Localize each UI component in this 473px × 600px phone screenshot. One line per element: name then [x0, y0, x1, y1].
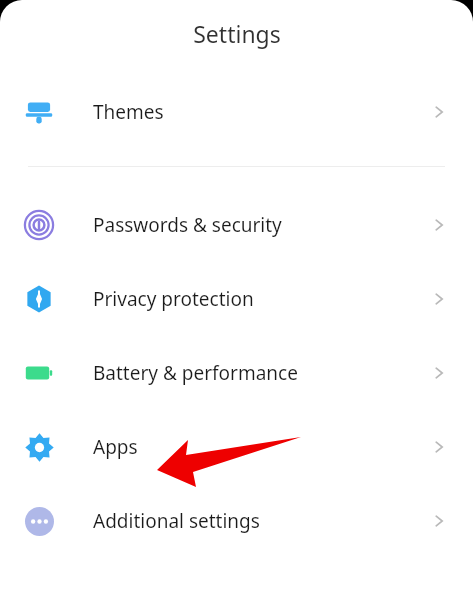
button[interactable]: Themes	[0, 85, 473, 139]
staticText: Passwords & security	[93, 212, 429, 238]
staticText: Apps	[93, 434, 429, 460]
button[interactable]: Battery & performance	[0, 346, 473, 400]
staticText: Battery & performance	[93, 360, 429, 386]
button[interactable]: Apps	[0, 420, 473, 474]
staticText: Privacy protection	[93, 286, 429, 312]
staticText: Additional settings	[93, 508, 429, 534]
staticText: Settings	[193, 18, 281, 49]
button[interactable]: Additional settings	[0, 494, 473, 548]
button[interactable]: Passwords & security	[0, 198, 473, 252]
button[interactable]: Privacy protection	[0, 272, 473, 326]
staticText: Themes	[93, 99, 429, 125]
